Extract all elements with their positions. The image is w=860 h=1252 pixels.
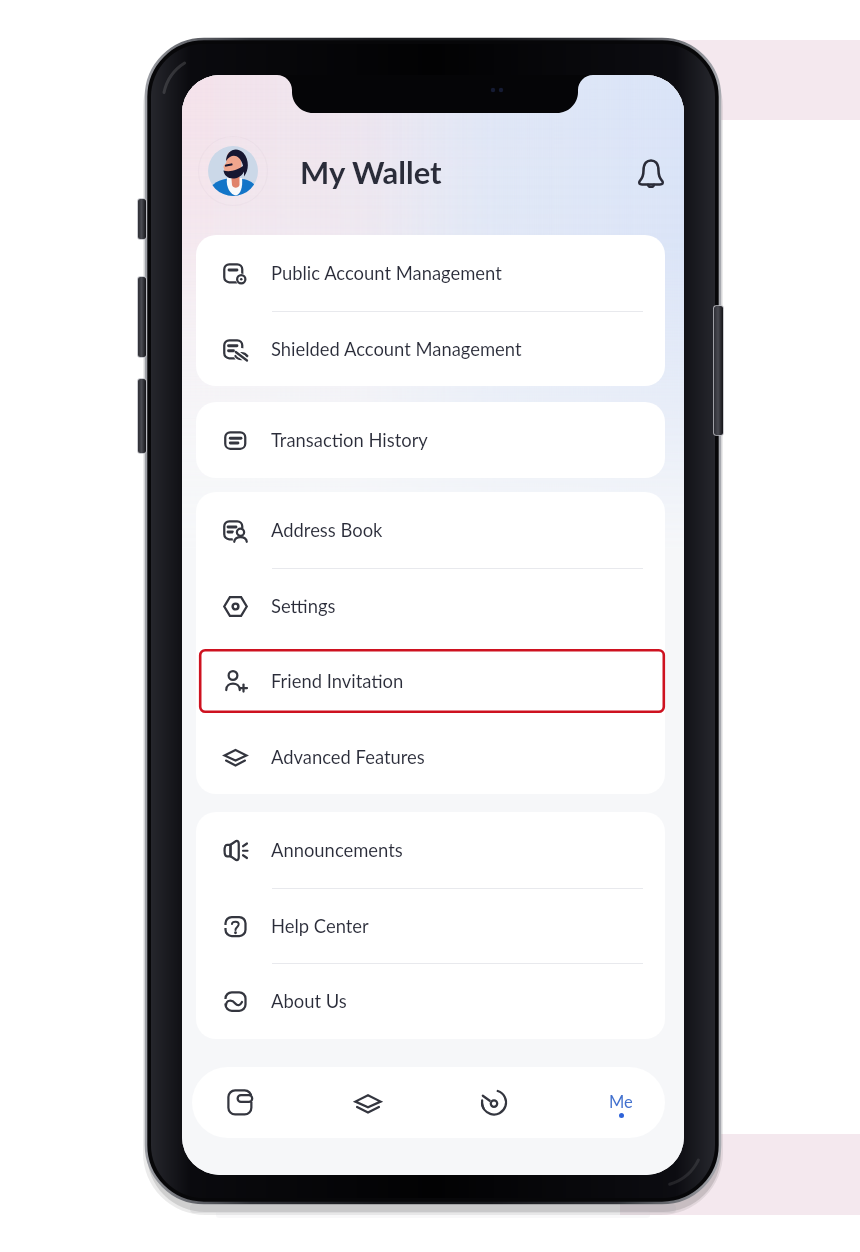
button[interactable]: Notifications [631, 153, 671, 193]
staticText: Shielded Account Management [271, 338, 522, 360]
staticText: Advanced Features [271, 746, 425, 768]
button[interactable]: Shielded Account Management [196, 311, 665, 386]
button[interactable]: Assets [335, 1067, 401, 1138]
staticText: My Wallet [300, 153, 442, 190]
staticText: Address Book [271, 519, 383, 541]
button[interactable]: Announcements [196, 812, 665, 888]
button[interactable]: Discover [461, 1067, 527, 1138]
button[interactable]: Friend Invitation [196, 643, 665, 719]
staticText: Settings [271, 595, 336, 617]
button[interactable]: About Us [196, 963, 665, 1039]
button[interactable]: Public Account Management [196, 235, 665, 311]
staticText: About Us [271, 990, 347, 1012]
button[interactable]: Address Book [196, 492, 665, 568]
button[interactable]: Wallet [208, 1067, 274, 1138]
staticText: Transaction History [271, 429, 428, 451]
button[interactable]: Help Center [196, 888, 665, 964]
staticText: Me [609, 1092, 633, 1112]
staticText: Announcements [271, 839, 403, 861]
button[interactable]: Settings [196, 568, 665, 644]
button[interactable]: Advanced Features [196, 719, 665, 794]
staticText: Public Account Management [271, 262, 502, 284]
button[interactable]: Transaction History [196, 402, 665, 478]
staticText: Friend Invitation [271, 670, 404, 692]
staticText: Help Center [271, 915, 369, 937]
button[interactable]: Me [588, 1067, 654, 1138]
